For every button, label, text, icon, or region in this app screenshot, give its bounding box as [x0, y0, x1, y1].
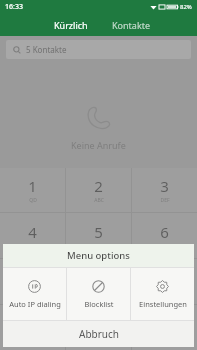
button[interactable]: 2 [66, 168, 131, 212]
button[interactable]: 1 [0, 168, 65, 212]
button[interactable]: 8 [66, 259, 131, 304]
button[interactable]: 7 [0, 259, 65, 304]
staticText: 2 [94, 176, 103, 196]
staticText: 3 [160, 176, 169, 196]
staticText: 7 [28, 268, 37, 288]
button[interactable]: * [0, 305, 65, 350]
staticText: Kürzlich [54, 19, 88, 31]
staticText: TUV [94, 289, 104, 296]
staticText: Keine Anrufe [71, 139, 126, 151]
button[interactable]: 4 [0, 213, 65, 258]
other: Auto IP dialing [28, 280, 41, 293]
button[interactable]: Kontakte [106, 19, 157, 31]
staticText: QD [29, 197, 37, 204]
button[interactable]: 5 Kontakte [6, 40, 191, 59]
staticText: + [97, 335, 100, 342]
staticText: 16:33 [5, 2, 23, 12]
other: Blocklist [92, 280, 105, 293]
staticText: Kontakte [112, 19, 151, 31]
staticText: 1 [28, 176, 37, 196]
button[interactable]: Kürzlich [48, 19, 94, 31]
staticText: Menu options [67, 249, 130, 262]
staticText: MNO [158, 243, 171, 250]
staticText: Auto IP dialing [9, 299, 61, 309]
button[interactable]: 6 [132, 213, 197, 258]
staticText: # [160, 318, 170, 338]
other: Einstellungen [156, 280, 169, 293]
staticText: * [28, 318, 37, 338]
button[interactable]: 3 [132, 168, 197, 212]
staticText: DEF [160, 197, 170, 204]
staticText: ABC [94, 197, 104, 204]
staticText: 4 [28, 222, 37, 242]
button[interactable]: 5 [66, 213, 131, 258]
staticText: 5 [94, 222, 103, 242]
staticText: 82% [180, 3, 192, 11]
staticText: Blocklist [84, 299, 114, 309]
button[interactable]: Abbruch [3, 321, 194, 347]
staticText: 0 [94, 314, 103, 334]
staticText: Einstellungen [139, 299, 187, 309]
staticText: PQRS [26, 289, 39, 296]
staticText: 8 [94, 268, 103, 288]
button[interactable]: Auto IP dialing [3, 268, 66, 320]
staticText: Abbruch [79, 327, 119, 341]
staticText: WXYZ [158, 289, 172, 296]
button[interactable]: Blocklist [67, 268, 130, 320]
button[interactable]: 0 [66, 305, 131, 350]
staticText: 5 Kontakte [26, 44, 67, 55]
staticText: GHI [28, 243, 38, 250]
staticText: JKL [95, 243, 103, 250]
staticText: 9 [160, 268, 169, 288]
button[interactable]: Einstellungen [131, 268, 194, 320]
button[interactable]: 9 [132, 259, 197, 304]
staticText: 6 [160, 222, 169, 242]
button[interactable]: # [132, 305, 197, 350]
